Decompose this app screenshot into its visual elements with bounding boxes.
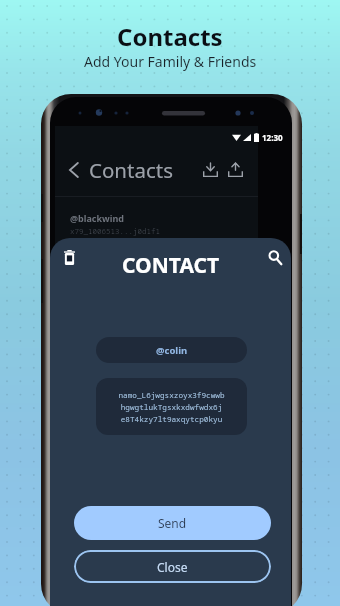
staticText: CONTACT [122, 251, 220, 280]
button[interactable]: Share [223, 158, 247, 182]
staticText: Send [158, 515, 187, 531]
staticText: Close [157, 559, 188, 575]
staticText: @colin [156, 344, 188, 357]
button[interactable]: Close [74, 550, 271, 583]
button[interactable]: Download [198, 158, 222, 182]
staticText: namo_L6jwgsxzoyx3f9cwwb hgwgtlukTgsxkxdw… [118, 390, 225, 424]
button[interactable]: Delete [58, 246, 80, 268]
staticText: Add Your Family & Friends [84, 52, 257, 71]
button[interactable]: Back [63, 159, 85, 181]
staticText: Contacts [117, 20, 223, 53]
button[interactable]: Send [74, 506, 271, 540]
button[interactable]: Search [264, 246, 286, 268]
staticText: Contacts [89, 156, 173, 184]
staticText: x79_1006513...j0d1f1 [70, 226, 160, 236]
button[interactable]: @blackwind [70, 212, 160, 236]
staticText: @blackwind [70, 212, 125, 224]
button[interactable]: @colin [96, 337, 247, 363]
staticText: 12:30 [262, 132, 283, 143]
